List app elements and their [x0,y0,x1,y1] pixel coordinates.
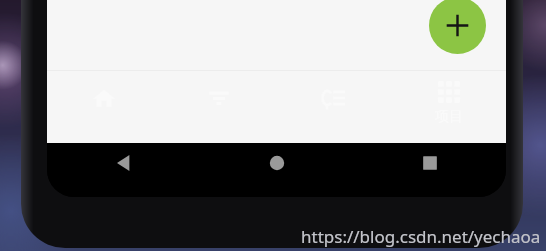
button[interactable]: Back [47,143,200,197]
button[interactable]: Add [429,0,486,54]
staticText: https://blog.csdn.net/yechaoa [301,225,541,248]
button[interactable]: Home [200,143,353,197]
button[interactable]: Recents [353,143,506,197]
